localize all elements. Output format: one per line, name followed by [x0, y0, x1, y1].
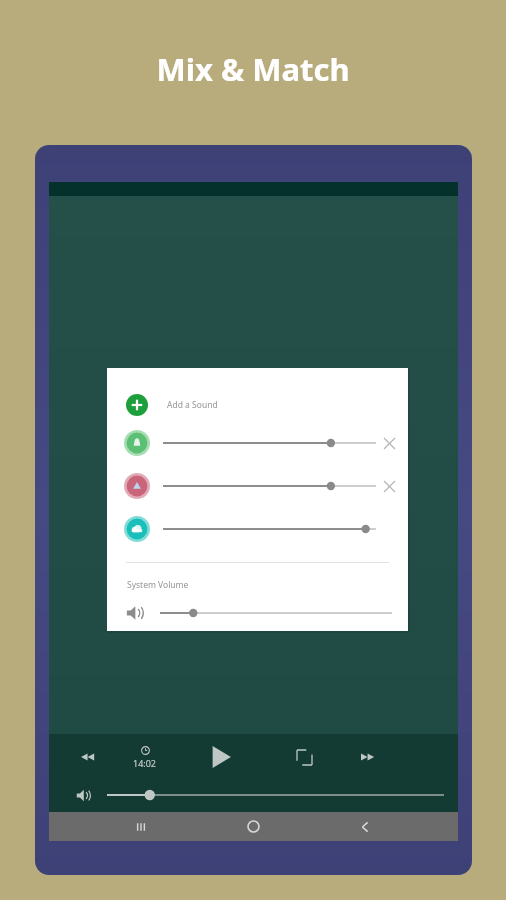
button[interactable]: Add a Sound	[107, 389, 408, 421]
button[interactable]: Volume slider	[160, 606, 392, 620]
button[interactable]: Play	[201, 737, 241, 777]
button[interactable]: Home	[234, 812, 272, 841]
button[interactable]: Sound icon	[124, 473, 150, 499]
button[interactable]: Timer	[133, 746, 157, 769]
button[interactable]: Sound icon	[124, 516, 150, 542]
button[interactable]: Rewind	[71, 740, 105, 774]
button[interactable]: Volume slider	[163, 479, 376, 493]
staticText: 14:02	[133, 757, 157, 769]
staticText: Mix & Match	[0, 48, 506, 90]
button[interactable]: Remove sound	[376, 473, 402, 499]
button[interactable]: Volume slider	[163, 522, 376, 536]
staticText: Add a Sound	[167, 399, 218, 411]
button[interactable]: Mute	[73, 785, 93, 805]
staticText: System Volume	[127, 579, 189, 591]
other: System volume	[126, 604, 144, 622]
button[interactable]: Volume slider	[163, 436, 376, 450]
button[interactable]: Repeat	[287, 740, 321, 774]
button[interactable]: Recents	[122, 812, 160, 841]
button[interactable]: Sound icon	[124, 430, 150, 456]
button[interactable]: Back	[346, 812, 384, 841]
button[interactable]: Fast forward	[351, 740, 385, 774]
button[interactable]: Master volume	[107, 788, 444, 802]
button[interactable]: Remove sound	[376, 430, 402, 456]
